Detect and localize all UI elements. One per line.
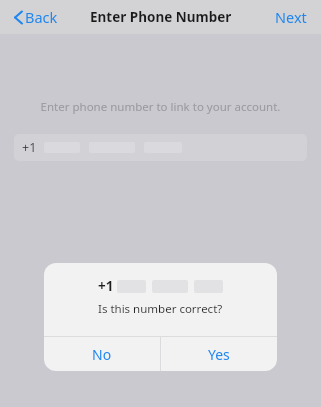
staticText: Back xyxy=(25,7,58,27)
staticText: Yes xyxy=(208,345,230,364)
staticText: No xyxy=(92,345,112,364)
staticText: +1 xyxy=(98,277,114,295)
button[interactable]: +1 xyxy=(14,134,307,161)
staticText: Next xyxy=(275,7,307,27)
button[interactable]: Yes xyxy=(161,337,277,371)
button[interactable]: Next xyxy=(272,3,310,31)
staticText: +1 xyxy=(22,139,37,156)
button[interactable]: Back xyxy=(11,3,61,31)
button[interactable]: No xyxy=(44,337,160,371)
staticText: Is this number correct? xyxy=(98,301,223,317)
staticText: Enter phone number to link to your accou… xyxy=(0,99,321,115)
staticText: Enter Phone Number xyxy=(90,8,232,26)
